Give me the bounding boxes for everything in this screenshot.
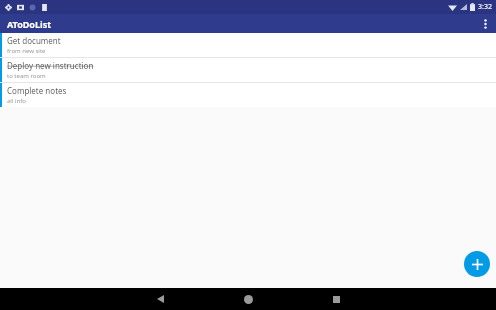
button[interactable]: More options [474, 14, 496, 33]
button[interactable]: Deploy new instruction [0, 58, 496, 82]
button[interactable]: Complete notes [0, 83, 496, 107]
staticText: Get document [7, 35, 61, 46]
staticText: Deploy new instruction [7, 60, 94, 71]
staticText: from new site [7, 47, 46, 55]
button[interactable]: Recent apps [292, 288, 380, 310]
button[interactable]: Back [116, 288, 204, 310]
staticText: to team room [7, 72, 46, 80]
staticText: all info [7, 97, 26, 105]
button[interactable]: Get document [0, 33, 496, 57]
staticText: AToDoList [7, 18, 52, 30]
staticText: 3:32 [478, 2, 492, 12]
button[interactable]: Add task [464, 251, 490, 277]
button[interactable]: Home [204, 288, 292, 310]
staticText: Complete notes [7, 85, 67, 96]
